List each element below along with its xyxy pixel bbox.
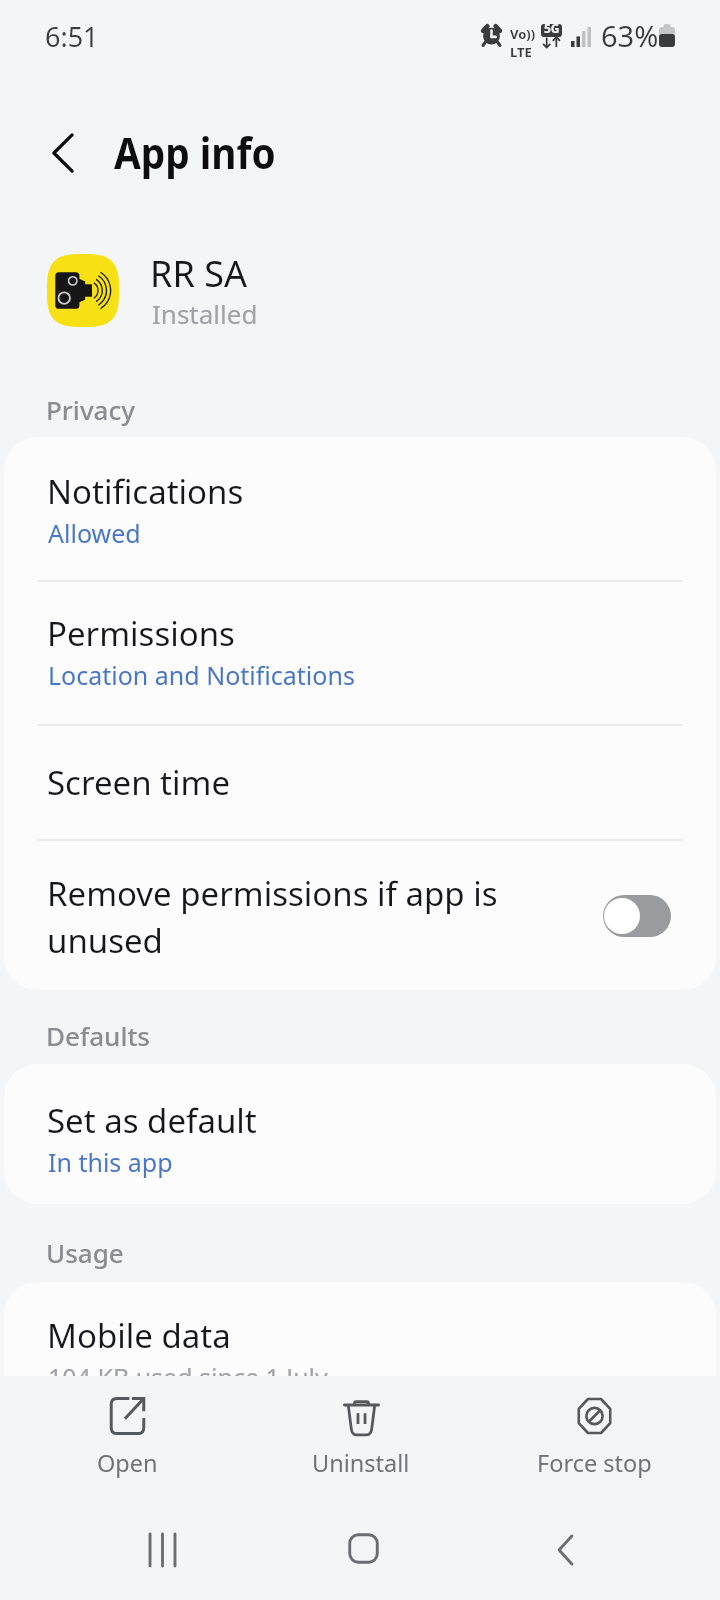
staticText: Installed: [152, 296, 258, 331]
button[interactable]: Set as default: [4, 1064, 716, 1204]
staticText: Vo)): [510, 25, 536, 43]
staticText: Location and Notifications: [48, 658, 355, 692]
staticText: Force stop: [537, 1447, 652, 1479]
staticText: Defaults: [46, 1018, 151, 1053]
staticText: In this app: [48, 1145, 173, 1179]
staticText: Notifications: [47, 469, 244, 514]
button[interactable]: Notifications: [4, 437, 716, 580]
staticText: Remove permissions if app is unused: [47, 869, 543, 963]
button[interactable]: Mobile data: [4, 1282, 716, 1422]
button[interactable]: Open: [17, 1376, 237, 1495]
button[interactable]: Navigate up: [27, 117, 99, 189]
button[interactable]: Uninstall: [251, 1376, 471, 1495]
staticText: Set as default: [47, 1098, 257, 1143]
staticText: 5G: [544, 24, 560, 36]
button[interactable]: Home: [308, 1497, 418, 1600]
button[interactable]: Force stop: [484, 1376, 704, 1495]
staticText: Open: [97, 1447, 158, 1479]
staticText: App info: [114, 123, 276, 182]
staticText: 63%: [601, 16, 659, 55]
staticText: Usage: [46, 1235, 124, 1270]
staticText: 104 KB used since 1 July: [48, 1360, 328, 1394]
button[interactable]: Screen time: [4, 726, 716, 839]
button[interactable]: Back: [510, 1497, 620, 1600]
button[interactable]: Recent apps: [107, 1497, 217, 1600]
button[interactable]: Remove permissions if app is unused: [603, 895, 671, 937]
staticText: LTE: [510, 43, 532, 61]
staticText: 6:51: [45, 18, 99, 55]
staticText: Privacy: [46, 392, 135, 427]
staticText: RR SA: [150, 249, 247, 298]
staticText: Permissions: [47, 611, 235, 656]
staticText: Allowed: [48, 516, 141, 550]
button[interactable]: Remove permissions if app is unused: [4, 841, 716, 990]
button[interactable]: Permissions: [4, 582, 716, 724]
staticText: Uninstall: [312, 1447, 410, 1479]
staticText: Screen time: [47, 760, 231, 805]
staticText: Mobile data: [47, 1313, 231, 1358]
